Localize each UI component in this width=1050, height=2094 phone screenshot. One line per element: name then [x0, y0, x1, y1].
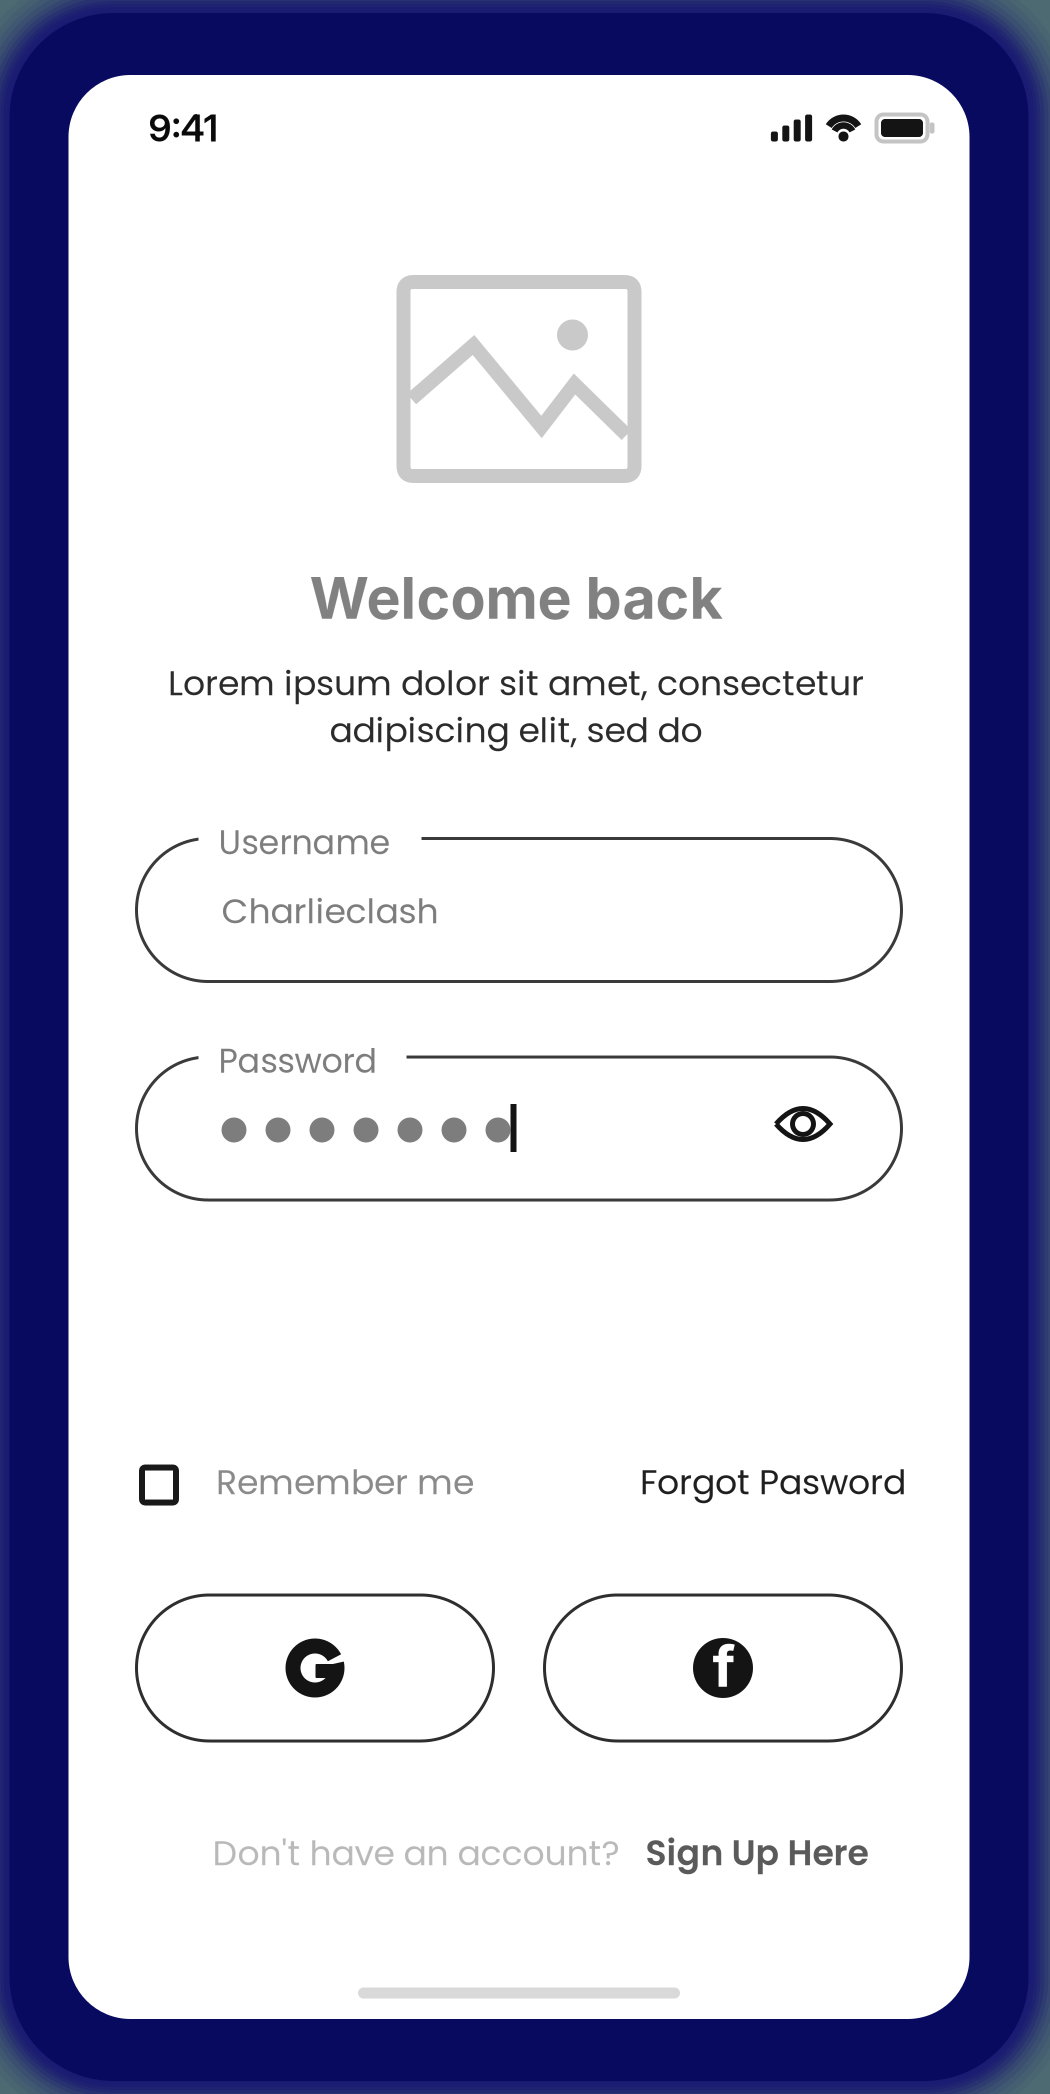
staticText: 9:41 [148, 105, 218, 151]
button[interactable]: Forgot Pasword [640, 1458, 906, 1506]
button[interactable]: Continue with Facebook [544, 1595, 901, 1741]
staticText: adipiscing elit, sed do [329, 706, 702, 754]
staticText: Lorem ipsum dolor sit amet, consectetur [168, 659, 864, 707]
staticText: Welcome back [309, 563, 722, 633]
staticText: Charlieclash [221, 887, 438, 935]
staticText: Remember me [216, 1458, 474, 1506]
button[interactable]: Password [136, 1057, 901, 1200]
button[interactable]: Remember me [142, 1458, 474, 1506]
staticText: f [712, 1631, 735, 1701]
staticText: Password [218, 1038, 377, 1084]
staticText: Sign Up Here [645, 1829, 868, 1877]
button[interactable]: Sign Up Here [645, 1829, 868, 1877]
staticText: Username [218, 819, 390, 866]
button[interactable]: Username [136, 838, 901, 981]
staticText: Forgot Pasword [640, 1458, 906, 1506]
staticText: Don't have an account? [212, 1829, 619, 1877]
button[interactable]: Continue with Google [136, 1595, 493, 1741]
